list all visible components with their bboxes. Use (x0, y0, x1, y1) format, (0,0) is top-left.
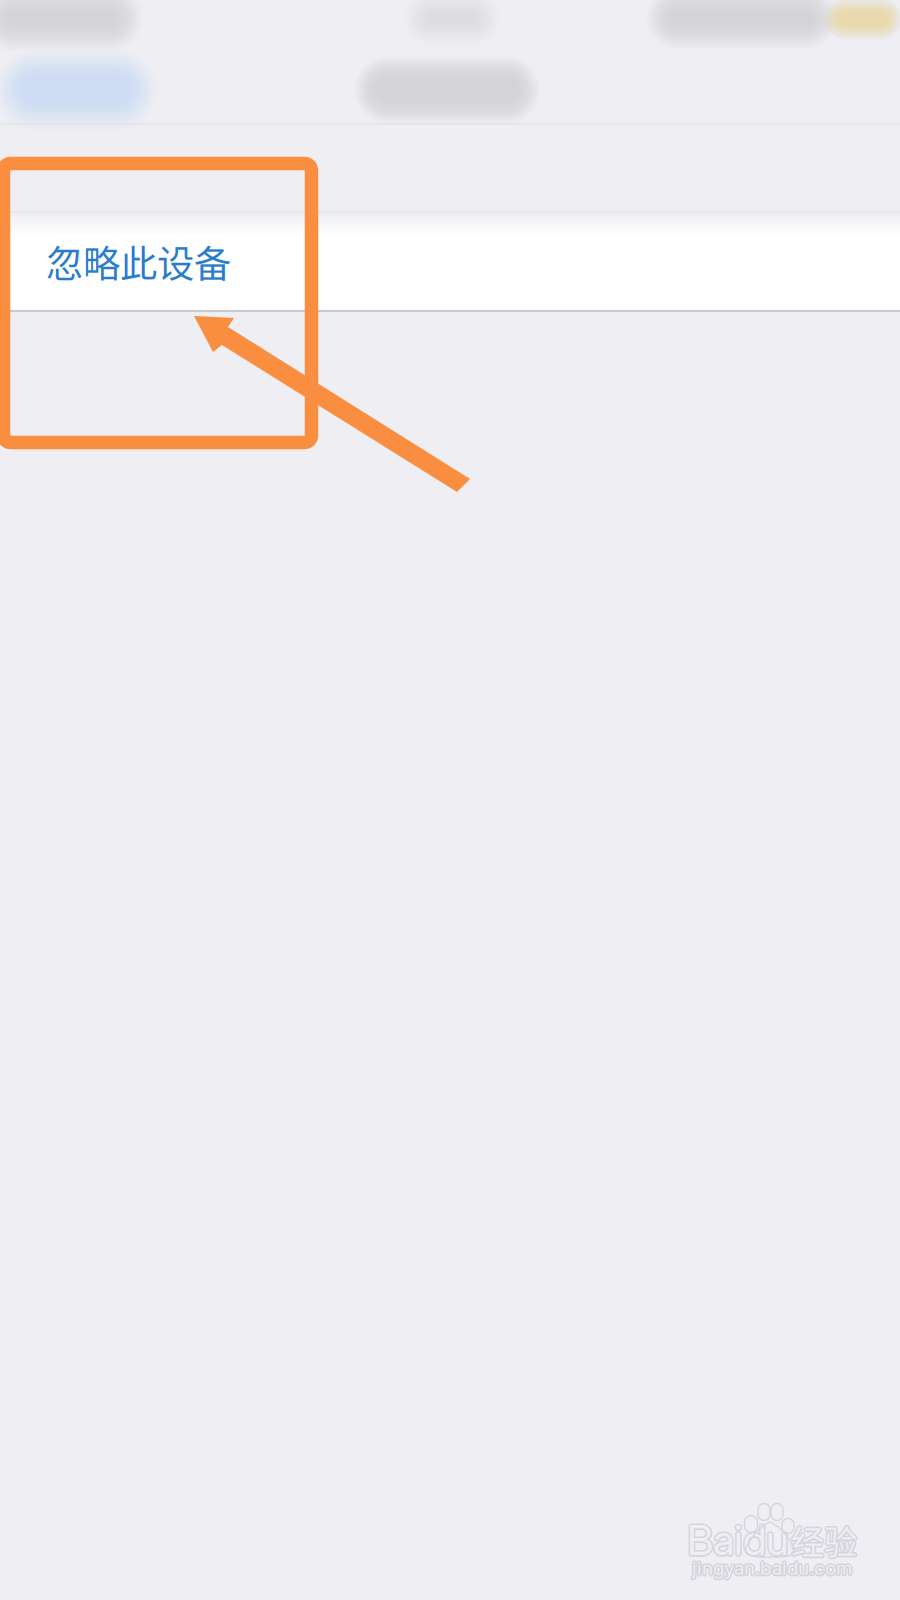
staticText: jingyan.baidu.com (690, 1557, 850, 1579)
staticText: jingyan.baidu.com (692, 1557, 852, 1579)
staticText: 经验 (791, 1517, 857, 1566)
staticText: jingyan.baidu.com (693, 1556, 853, 1578)
staticText: Baidu (685, 1515, 787, 1565)
staticText: 忽略此设备 (46, 234, 231, 289)
staticText: Baidu (689, 1515, 791, 1565)
staticText: 经验 (790, 1517, 856, 1565)
staticText: 经验 (791, 1514, 857, 1563)
staticText: Baidu (686, 1514, 788, 1564)
staticText: Baidu (688, 1516, 790, 1566)
staticText: jingyan.baidu.com (693, 1558, 853, 1580)
staticText: jingyan.baidu.com (691, 1558, 851, 1580)
staticText: jingyan.baidu.com (691, 1556, 851, 1578)
staticText: Baidu (687, 1513, 789, 1563)
staticText: 经验 (792, 1517, 858, 1565)
staticText: Baidu (687, 1515, 789, 1565)
staticText: 经验 (790, 1515, 856, 1563)
staticText: 经验 (791, 1516, 857, 1564)
staticText: Baidu (688, 1514, 790, 1564)
button[interactable]: 忽略此设备 (0, 213, 900, 310)
staticText: jingyan.baidu.com (692, 1558, 852, 1581)
staticText: Baidu (686, 1516, 788, 1566)
staticText: 经验 (793, 1516, 859, 1564)
staticText: 经验 (792, 1515, 858, 1563)
staticText: jingyan.baidu.com (692, 1555, 852, 1578)
staticText: Baidu (687, 1517, 789, 1567)
staticText: jingyan.baidu.com (694, 1557, 854, 1579)
staticText: 经验 (789, 1516, 855, 1564)
